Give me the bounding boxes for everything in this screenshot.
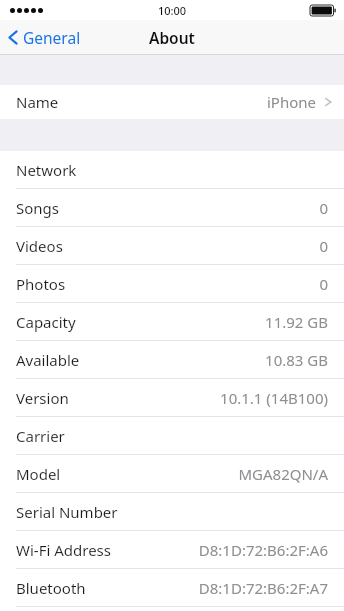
staticText: D8:1D:72:B6:2F:A7 xyxy=(198,578,328,598)
staticText: Wi-Fi Address xyxy=(16,540,198,560)
staticText: iPhone xyxy=(266,92,316,112)
staticText: MGA82QN/A xyxy=(238,464,328,484)
staticText: Serial Number xyxy=(16,502,328,522)
button[interactable]: Available xyxy=(0,341,344,378)
button[interactable]: Videos xyxy=(0,227,344,264)
staticText: 10.83 GB xyxy=(265,350,328,370)
staticText: Capacity xyxy=(16,312,265,332)
staticText: D8:1D:72:B6:2F:A6 xyxy=(198,540,328,560)
staticText: 10.1.1 (14B100) xyxy=(220,388,328,408)
button[interactable]: Name xyxy=(0,85,344,119)
staticText: Bluetooth xyxy=(16,578,198,598)
button[interactable]: Model xyxy=(0,455,344,492)
staticText: Songs xyxy=(16,198,319,218)
staticText: General xyxy=(23,27,81,48)
staticText: Carrier xyxy=(16,426,328,446)
staticText: Model xyxy=(16,464,238,484)
button[interactable]: Serial Number xyxy=(0,493,344,530)
staticText: Name xyxy=(16,92,266,112)
staticText: 0 xyxy=(319,236,328,256)
button[interactable]: Songs xyxy=(0,189,344,226)
button[interactable]: Version xyxy=(0,379,344,416)
staticText: Photos xyxy=(16,274,319,294)
staticText: Version xyxy=(16,388,220,408)
button[interactable]: Capacity xyxy=(0,303,344,340)
staticText: Videos xyxy=(16,236,319,256)
button[interactable]: Network xyxy=(0,151,344,188)
staticText: About xyxy=(149,27,195,48)
button[interactable]: General xyxy=(8,27,81,48)
button[interactable]: Carrier xyxy=(0,417,344,454)
staticText: Network xyxy=(16,160,328,180)
button[interactable]: Photos xyxy=(0,265,344,302)
staticText: 0 xyxy=(319,274,328,294)
staticText: 10:00 xyxy=(158,3,187,18)
button[interactable]: Wi-Fi Address xyxy=(0,531,344,568)
staticText: 11.92 GB xyxy=(265,312,328,332)
staticText: 0 xyxy=(319,198,328,218)
staticText: Available xyxy=(16,350,265,370)
button[interactable]: Bluetooth xyxy=(0,569,344,606)
